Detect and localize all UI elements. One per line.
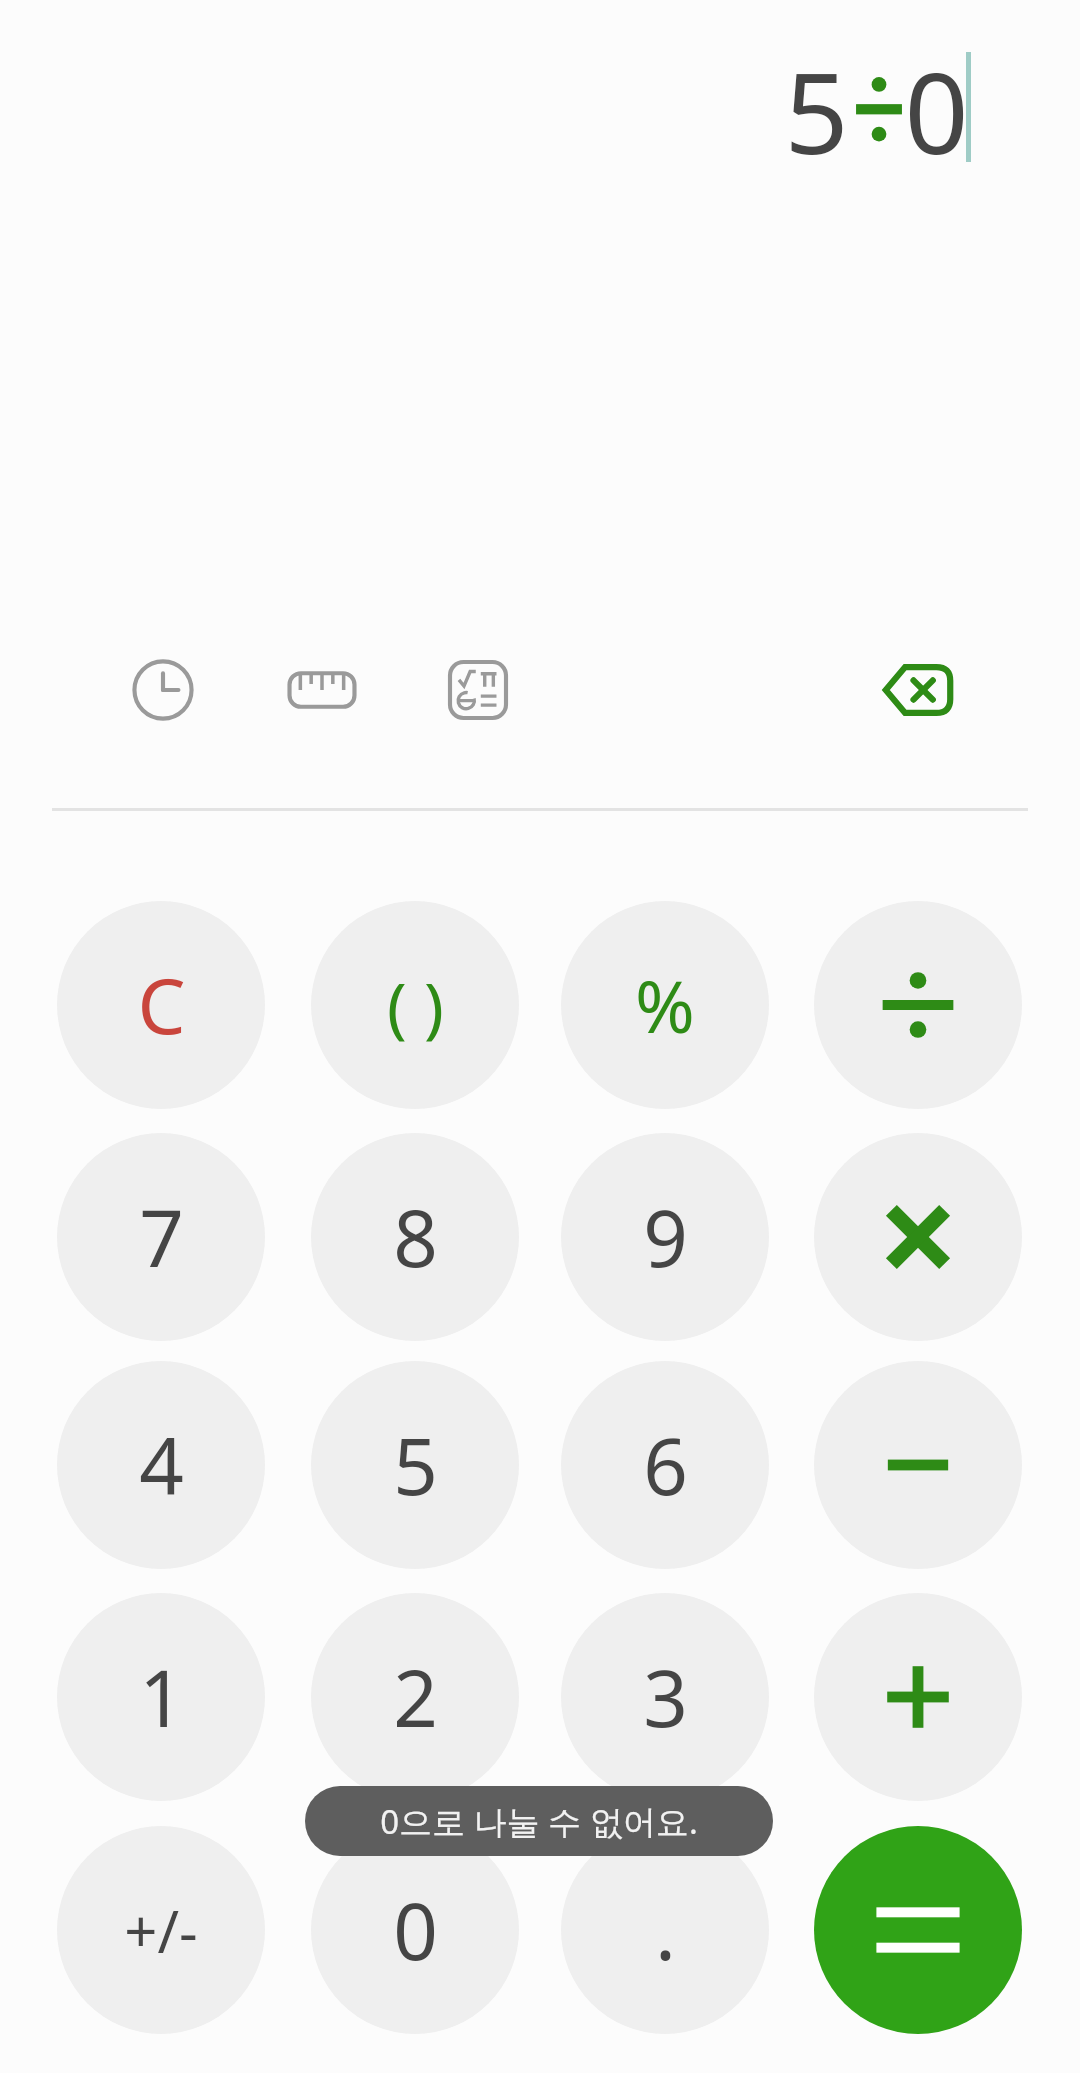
button[interactable]: 7	[57, 1133, 265, 1341]
staticText: +/-	[124, 1891, 198, 1970]
button[interactable]: Minus	[814, 1361, 1022, 1569]
button[interactable]: Equals	[814, 1826, 1022, 2034]
staticText: .	[655, 1877, 676, 1983]
button[interactable]: .	[561, 1826, 769, 2034]
staticText: %	[635, 956, 695, 1054]
button[interactable]: +/-	[57, 1826, 265, 2034]
staticText: 5	[393, 1412, 438, 1518]
staticText: 5	[784, 34, 849, 176]
button[interactable]: Multiply	[814, 1133, 1022, 1341]
button[interactable]: Scientific calculator	[422, 634, 534, 746]
button[interactable]: %	[561, 901, 769, 1109]
button[interactable]: C	[57, 901, 265, 1109]
button[interactable]: 0	[311, 1826, 519, 2034]
button[interactable]: 1	[57, 1593, 265, 1801]
staticText: 9	[643, 1184, 688, 1290]
button[interactable]: 4	[57, 1361, 265, 1569]
staticText: 0	[904, 34, 969, 176]
staticText: 3	[643, 1644, 688, 1750]
button[interactable]: Plus	[814, 1593, 1022, 1801]
button[interactable]: 9	[561, 1133, 769, 1341]
button[interactable]: 2	[311, 1593, 519, 1801]
staticText: 0으로 나눌 수 없어요.	[380, 1799, 698, 1844]
staticText: 8	[393, 1184, 438, 1290]
button[interactable]: Divide	[814, 901, 1022, 1109]
button[interactable]: Unit converter	[266, 634, 378, 746]
staticText: 7	[139, 1184, 184, 1290]
staticText: ( )	[387, 960, 444, 1050]
staticText: C	[137, 953, 186, 1057]
staticText: 6	[643, 1412, 688, 1518]
button[interactable]: 3	[561, 1593, 769, 1801]
staticText: 4	[139, 1412, 184, 1518]
staticText: 0	[393, 1877, 438, 1983]
button[interactable]: 8	[311, 1133, 519, 1341]
staticText: 1	[139, 1644, 184, 1750]
button[interactable]: ( )	[311, 901, 519, 1109]
button[interactable]: History	[107, 634, 219, 746]
button[interactable]: 6	[561, 1361, 769, 1569]
button[interactable]: Backspace	[856, 628, 980, 752]
button[interactable]: 5	[311, 1361, 519, 1569]
staticText: 2	[393, 1644, 438, 1750]
